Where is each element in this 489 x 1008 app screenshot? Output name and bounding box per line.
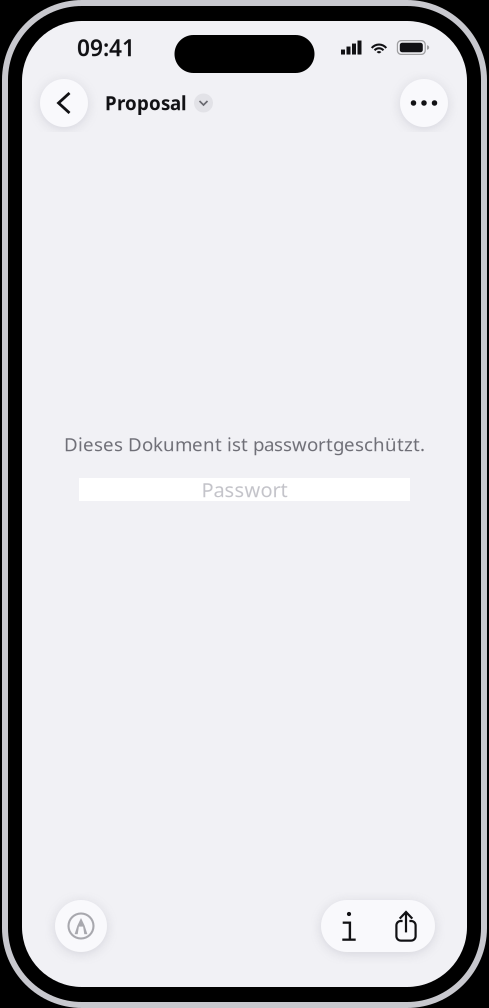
staticText: Passwort xyxy=(201,476,287,503)
button[interactable]: Passwort xyxy=(79,478,410,501)
button[interactable]: Proposal xyxy=(88,91,213,115)
staticText: 09:41 xyxy=(77,32,135,62)
button[interactable]: Info xyxy=(321,900,377,952)
staticText: Proposal xyxy=(105,91,187,115)
button[interactable]: More options xyxy=(400,79,448,127)
button[interactable]: Share xyxy=(377,900,435,952)
button[interactable]: Markup xyxy=(55,900,107,952)
button[interactable]: Back xyxy=(40,79,88,127)
staticText: Dieses Dokument ist passwortgeschützt. xyxy=(64,432,425,456)
